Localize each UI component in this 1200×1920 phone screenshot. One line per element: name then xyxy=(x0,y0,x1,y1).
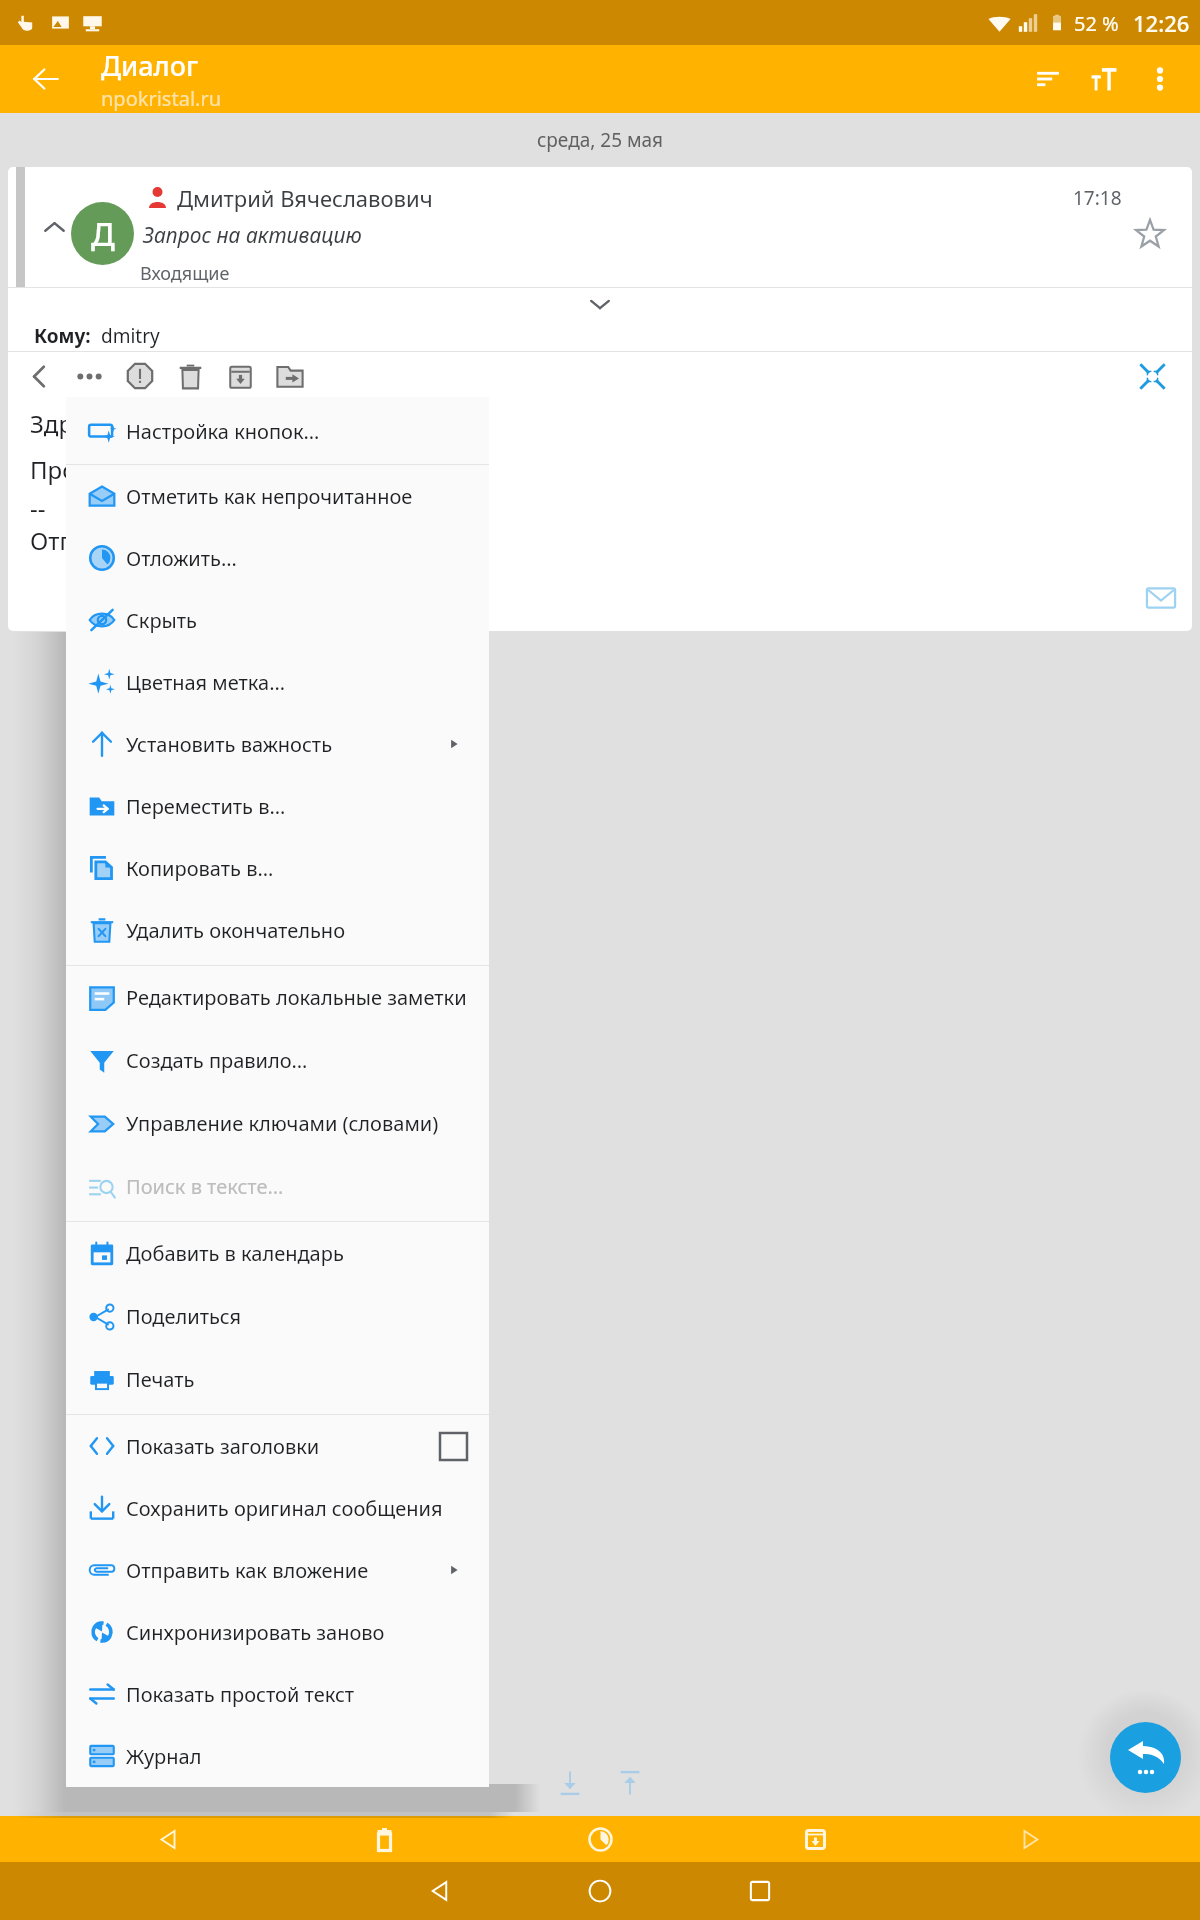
staticText: Дмитрий Вячеславович xyxy=(177,183,433,213)
staticText: npokristal.ru xyxy=(101,85,222,112)
button[interactable]: Scroll to top xyxy=(608,1761,652,1805)
button[interactable]: More xyxy=(67,352,111,400)
staticText: -- xyxy=(30,491,46,524)
staticText: Прошу активировать программу. xyxy=(30,453,420,486)
staticText: Поиск в тексте… xyxy=(126,1173,284,1200)
button[interactable]: Spam xyxy=(118,352,162,400)
button[interactable]: Управление ключами (словами) xyxy=(66,1092,489,1155)
button[interactable]: Collapse message xyxy=(32,167,76,287)
button[interactable]: Previous xyxy=(128,1816,208,1862)
button[interactable]: Snooze xyxy=(560,1816,640,1862)
staticText: Показать простой текст xyxy=(126,1681,355,1708)
staticText: Диалог xyxy=(101,47,199,84)
staticText: Показать заголовки xyxy=(126,1433,320,1460)
staticText: Журнал xyxy=(126,1743,202,1770)
button[interactable]: Редактировать локальные заметки xyxy=(66,966,489,1029)
staticText: Отложить… xyxy=(126,545,237,572)
staticText: 12:26 xyxy=(1133,8,1190,38)
button[interactable]: Копировать в… xyxy=(66,837,489,899)
staticText: Кому: xyxy=(34,323,91,349)
button[interactable]: Reply xyxy=(1110,1722,1181,1793)
staticText: dmitry xyxy=(101,323,160,349)
button[interactable]: Delete xyxy=(168,352,212,400)
button[interactable]: Добавить в календарь xyxy=(66,1222,489,1285)
button[interactable]: Archive xyxy=(775,1816,855,1862)
staticText: Редактировать локальные заметки xyxy=(126,984,467,1011)
button[interactable]: Цветная метка… xyxy=(66,651,489,713)
staticText: Отметить как непрочитанное xyxy=(126,483,413,510)
button[interactable]: Отложить… xyxy=(66,527,489,589)
staticText: Отправить как вложение xyxy=(126,1557,369,1584)
button[interactable]: Home xyxy=(520,1862,680,1920)
button[interactable]: Настройка кнопок… xyxy=(66,400,489,462)
staticText: Запрос на активацию xyxy=(143,221,362,250)
staticText: 52 % xyxy=(1074,10,1119,37)
button[interactable]: Создать правило… xyxy=(66,1029,489,1092)
button[interactable]: Показать простой текст xyxy=(66,1663,489,1725)
staticText: Копировать в… xyxy=(126,855,274,882)
staticText: Сохранить оригинал сообщения xyxy=(126,1495,443,1522)
staticText: Цветная метка… xyxy=(126,669,285,696)
staticText: Установить важность xyxy=(126,731,333,758)
button[interactable]: Text size xyxy=(1076,51,1132,107)
button[interactable]: Back xyxy=(360,1862,520,1920)
button[interactable]: Collapse xyxy=(1130,354,1174,398)
staticText: среда, 25 мая xyxy=(0,127,1200,153)
button[interactable]: Expand xyxy=(8,288,1192,320)
button[interactable]: Archive xyxy=(218,352,262,400)
button[interactable]: Поделиться xyxy=(66,1285,489,1348)
staticText: Переместить в… xyxy=(126,793,286,820)
staticText: Создать правило… xyxy=(126,1047,308,1074)
staticText: Отправлено из мобильного xyxy=(30,524,354,557)
staticText: Настройка кнопок… xyxy=(126,418,320,445)
button[interactable]: Сохранить оригинал сообщения xyxy=(66,1477,489,1539)
staticText: Синхронизировать заново xyxy=(126,1619,385,1646)
button[interactable]: Скрыть xyxy=(66,589,489,651)
button[interactable]: More options xyxy=(1132,51,1188,107)
button[interactable]: Move to xyxy=(268,352,312,400)
button[interactable]: Показать заголовки xyxy=(66,1415,489,1477)
button[interactable]: Отправить как вложение xyxy=(66,1539,489,1601)
staticText: Здравствуйте! xyxy=(30,407,194,440)
button[interactable]: Поиск в тексте… xyxy=(66,1155,489,1218)
button[interactable]: Установить важность xyxy=(66,713,489,775)
staticText: Добавить в календарь xyxy=(126,1240,344,1267)
button[interactable]: Next xyxy=(990,1816,1070,1862)
button[interactable]: Previous xyxy=(17,352,61,400)
button[interactable]: Переместить в… xyxy=(66,775,489,837)
staticText: 17:18 xyxy=(1073,185,1122,211)
button[interactable]: Печать xyxy=(66,1348,489,1411)
staticText: Печать xyxy=(126,1366,195,1393)
staticText: Скрыть xyxy=(126,607,197,634)
button[interactable]: Back xyxy=(22,55,70,103)
button[interactable]: Scroll to bottom xyxy=(548,1761,592,1805)
button[interactable]: Синхронизировать заново xyxy=(66,1601,489,1663)
staticText: Поделиться xyxy=(126,1303,242,1330)
staticText: Удалить окончательно xyxy=(126,917,346,944)
button[interactable]: Star xyxy=(1126,210,1174,258)
staticText: Входящие xyxy=(140,261,230,286)
button[interactable]: Журнал xyxy=(66,1725,489,1787)
staticText: Д xyxy=(91,212,115,256)
button[interactable]: Отметить как непрочитанное xyxy=(66,465,489,527)
button[interactable]: Sort xyxy=(1020,51,1076,107)
staticText: Управление ключами (словами) xyxy=(126,1110,439,1137)
button[interactable]: Delete xyxy=(344,1816,424,1862)
button[interactable]: Recents xyxy=(680,1862,840,1920)
button[interactable]: Удалить окончательно xyxy=(66,899,489,961)
